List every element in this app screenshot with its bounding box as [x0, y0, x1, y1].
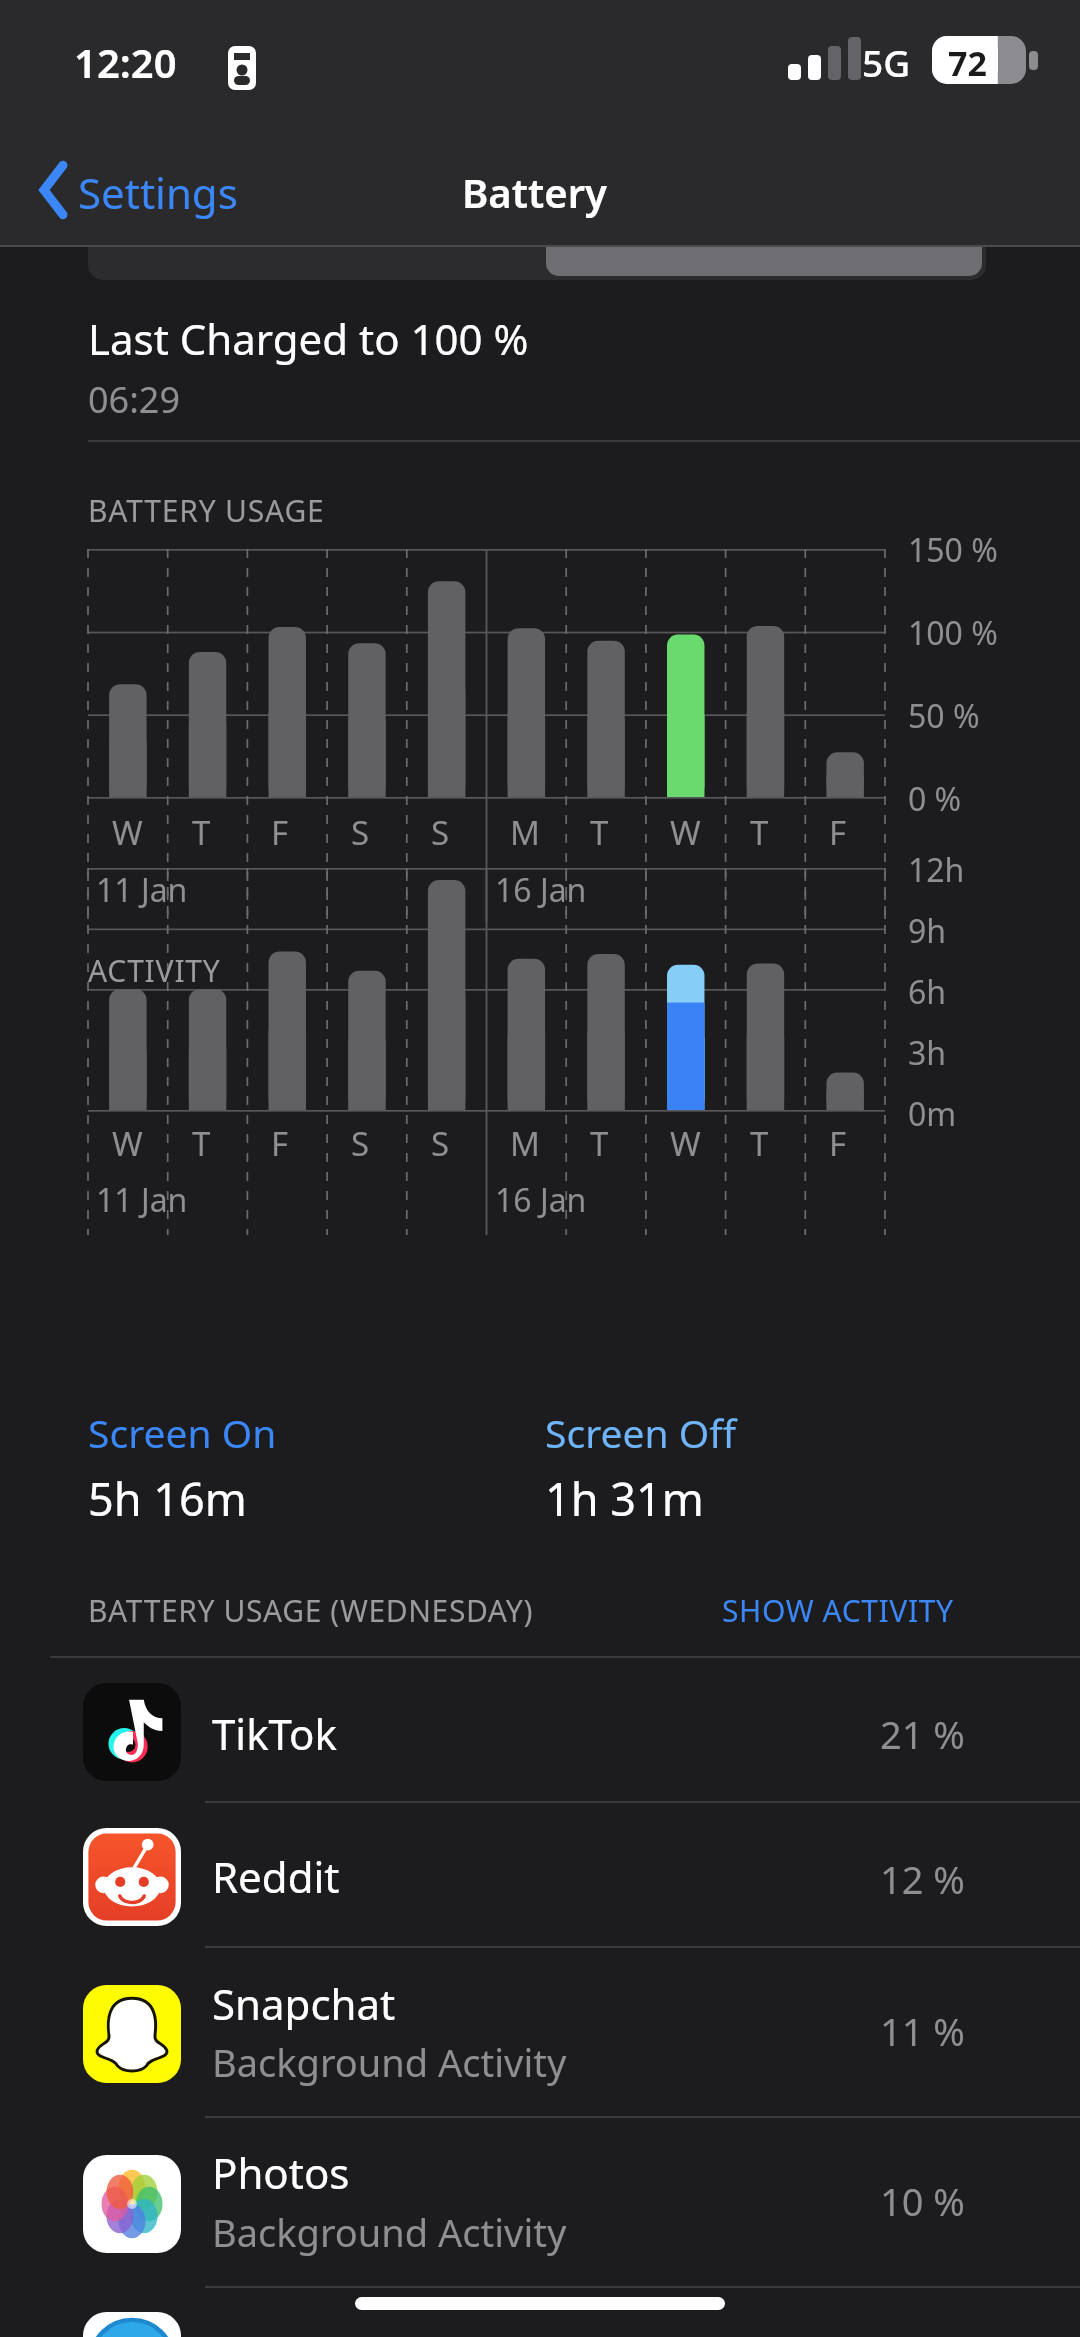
- staticText: ACTIVITY: [88, 950, 221, 991]
- staticText: T: [750, 810, 769, 855]
- staticText: 11 Jan: [96, 1178, 188, 1222]
- staticText: 21 %: [880, 1708, 965, 1760]
- staticText: Background Activity: [212, 2036, 567, 2088]
- staticText: M: [510, 1121, 540, 1166]
- staticText: W: [670, 810, 701, 855]
- staticText: W: [670, 1121, 701, 1166]
- staticText: Screen Off: [545, 1406, 736, 1459]
- staticText: Last Charged to 100 %: [88, 310, 529, 367]
- button[interactable]: [0, 1658, 1080, 1801]
- staticText: 12h: [908, 848, 965, 892]
- staticText: 0m: [908, 1092, 957, 1136]
- staticText: 0 %: [908, 777, 962, 821]
- button[interactable]: Last 10 Days: [546, 218, 986, 248]
- staticText: M: [510, 810, 540, 855]
- staticText: Settings: [78, 164, 238, 221]
- staticText: T: [750, 1121, 769, 1166]
- staticText: Background Activity: [212, 2206, 567, 2258]
- staticText: Battery: [462, 165, 607, 219]
- staticText: 3h: [908, 1031, 947, 1075]
- button[interactable]: [60, 1395, 460, 1510]
- staticText: 12:20: [74, 35, 177, 89]
- staticText: W: [112, 810, 143, 855]
- staticText: T: [590, 810, 609, 855]
- staticText: Photos: [212, 2144, 350, 2201]
- staticText: BATTERY USAGE: [88, 490, 325, 531]
- staticText: 9h: [908, 909, 947, 953]
- staticText: 06:29: [88, 375, 181, 424]
- staticText: W: [112, 1121, 143, 1166]
- staticText: F: [829, 810, 847, 855]
- staticText: T: [590, 1121, 609, 1166]
- staticText: Reddit: [212, 1848, 340, 1905]
- button[interactable]: Last 24 Hours: [88, 218, 538, 248]
- staticText: SHOW ACTIVITY: [722, 1590, 954, 1631]
- staticText: 16 Jan: [495, 1178, 587, 1222]
- staticText: F: [271, 1121, 289, 1166]
- button[interactable]: Back to Settings: [10, 150, 270, 230]
- staticText: S: [431, 810, 450, 855]
- staticText: 5h 16m: [88, 1468, 247, 1529]
- staticText: S: [431, 1121, 450, 1166]
- staticText: F: [829, 1121, 847, 1166]
- button[interactable]: [0, 2118, 1080, 2286]
- button[interactable]: [0, 1948, 1080, 2116]
- staticText: 12 %: [880, 1853, 965, 1905]
- staticText: BATTERY USAGE (WEDNESDAY): [88, 1590, 534, 1631]
- staticText: 50 %: [908, 694, 980, 738]
- staticText: S: [351, 1121, 370, 1166]
- staticText: TikTok: [212, 1705, 337, 1762]
- staticText: 10 %: [880, 2175, 965, 2227]
- staticText: 150 %: [908, 528, 998, 572]
- staticText: F: [271, 810, 289, 855]
- staticText: 11 Jan: [96, 868, 188, 912]
- staticText: T: [192, 810, 211, 855]
- staticText: Snapchat: [212, 1975, 396, 2032]
- staticText: 16 Jan: [495, 868, 587, 912]
- staticText: Screen On: [88, 1406, 277, 1459]
- staticText: S: [351, 810, 370, 855]
- button[interactable]: Show Activity: [700, 1575, 1040, 1641]
- button[interactable]: [0, 2288, 1080, 2336]
- button[interactable]: [520, 1395, 920, 1510]
- staticText: 100 %: [908, 611, 998, 655]
- staticText: T: [192, 1121, 211, 1166]
- staticText: 5G: [862, 37, 911, 87]
- button[interactable]: [0, 1803, 1080, 1946]
- staticText: 11 %: [880, 2005, 965, 2057]
- staticText: 6h: [908, 970, 947, 1014]
- staticText: 1h 31m: [545, 1468, 704, 1529]
- staticText: 72: [948, 40, 987, 86]
